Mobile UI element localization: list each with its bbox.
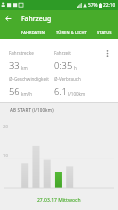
staticText: 27.03.17 Mittwoch <box>37 197 81 204</box>
staticText: Ø-Verbrauch <box>54 76 81 82</box>
button[interactable]: FAHRDATEN <box>16 26 51 39</box>
staticText: Ø-Geschwindigkeit <box>9 76 49 82</box>
staticText: STATUS <box>97 30 112 35</box>
staticText: 6.1 <box>54 85 67 98</box>
staticText: Fahrzeug <box>21 14 52 23</box>
staticText: km/h <box>21 91 33 97</box>
staticText: 57% <box>88 2 98 9</box>
staticText: 33 <box>9 59 20 72</box>
staticText: TÜREN & LICHT <box>56 30 87 35</box>
staticText: km <box>21 65 28 71</box>
staticText: Fahrstrecke <box>9 50 34 56</box>
staticText: 10 <box>3 153 8 159</box>
button[interactable]: STATUS <box>91 26 118 39</box>
staticText: 22:10 <box>103 2 116 9</box>
button[interactable]: More options <box>101 47 114 60</box>
staticText: 0:35 <box>54 59 73 72</box>
button[interactable]: TÜREN & LICHT <box>51 26 91 39</box>
staticText: AB START (l/100km) <box>10 107 54 113</box>
button[interactable]: Back <box>0 10 16 26</box>
staticText: 20 <box>3 124 8 130</box>
staticText: Fahrzeit <box>54 50 71 56</box>
staticText: 56 <box>9 85 20 98</box>
staticText: h <box>74 65 77 71</box>
staticText: l/100km <box>68 91 86 97</box>
staticText: FAHRDATEN <box>21 30 46 35</box>
